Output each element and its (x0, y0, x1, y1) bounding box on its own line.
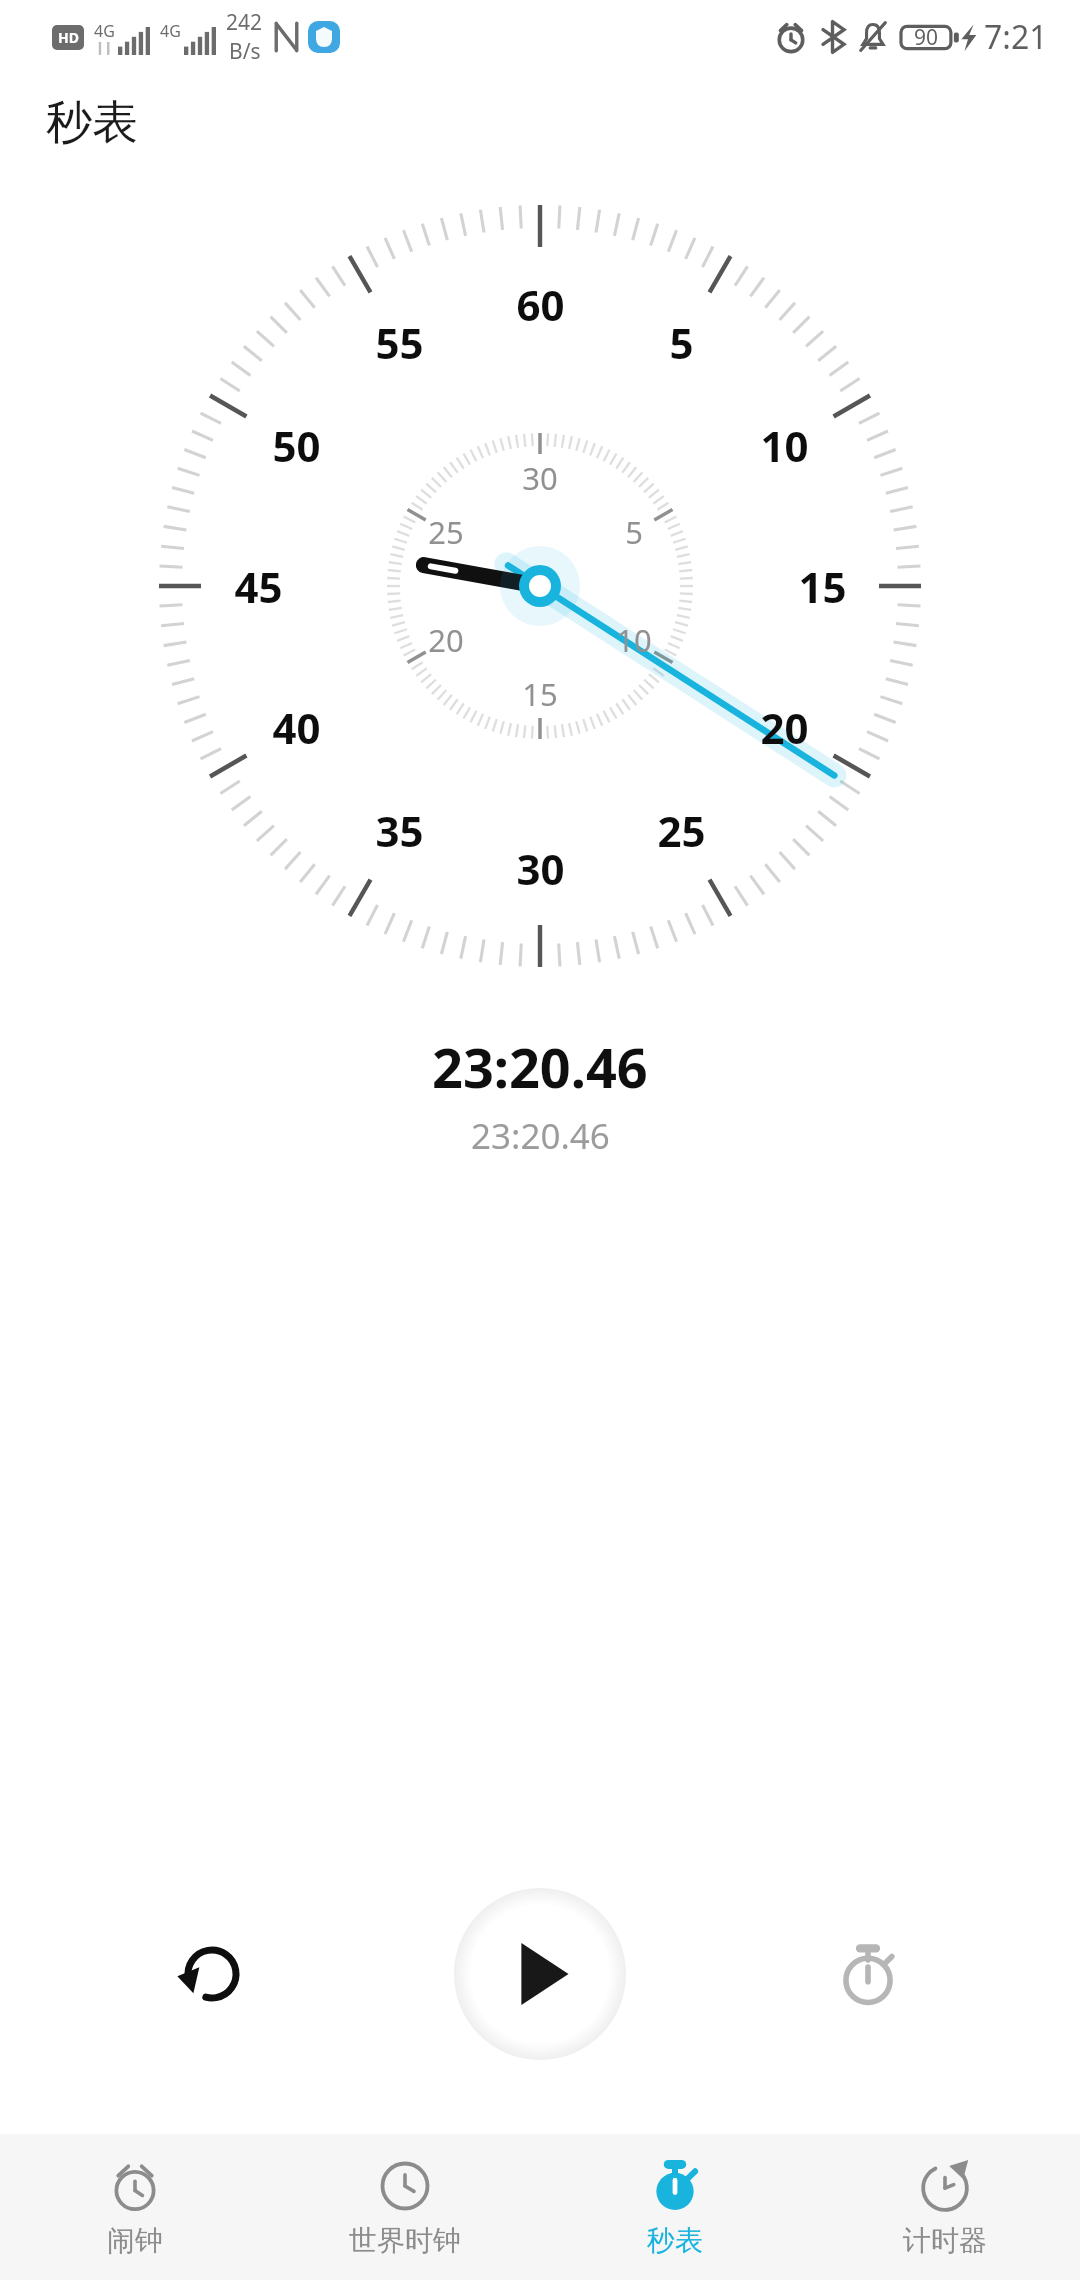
staticText: 秒表 (647, 2223, 703, 2258)
staticText: 55 (375, 314, 424, 371)
staticText: 50 (272, 417, 321, 474)
staticText: 35 (375, 802, 424, 859)
staticText: 10 (616, 619, 652, 661)
staticText: 20 (428, 619, 464, 661)
staticText: 23:20.46 (471, 1112, 610, 1160)
staticText: 45 (234, 558, 283, 615)
staticText: 秒表 (46, 94, 138, 152)
staticText: 23:20.46 (432, 1030, 648, 1104)
staticText: 15 (522, 673, 558, 715)
staticText: 4G (160, 20, 181, 42)
button[interactable]: 计时器 (810, 2134, 1080, 2280)
staticText: 5 (669, 314, 694, 371)
staticText: 7:21 (984, 15, 1048, 59)
staticText: 5 (625, 511, 643, 553)
staticText: 25 (657, 802, 706, 859)
staticText: B/s (229, 37, 261, 66)
button[interactable]: 闹钟 (0, 2134, 270, 2280)
staticText: 15 (798, 558, 847, 615)
button[interactable]: Lap (818, 1924, 918, 2024)
staticText: 30 (522, 457, 558, 499)
staticText: HD (58, 28, 79, 47)
staticText: 世界时钟 (349, 2223, 461, 2258)
staticText: 40 (272, 699, 321, 756)
staticText: 计时器 (903, 2223, 987, 2258)
staticText: 闹钟 (107, 2223, 163, 2258)
staticText: 30 (516, 840, 565, 897)
staticText: 25 (428, 511, 464, 553)
button[interactable]: Reset (162, 1924, 262, 2024)
staticText: 20 (760, 699, 809, 756)
button[interactable]: 世界时钟 (270, 2134, 540, 2280)
staticText: 4G (94, 20, 115, 42)
staticText: 242 (226, 8, 263, 37)
staticText: 60 (516, 276, 565, 333)
button[interactable]: 秒表 (540, 2134, 810, 2280)
staticText: 90 (914, 23, 939, 52)
staticText: 10 (760, 417, 809, 474)
button[interactable]: Start (454, 1888, 626, 2060)
